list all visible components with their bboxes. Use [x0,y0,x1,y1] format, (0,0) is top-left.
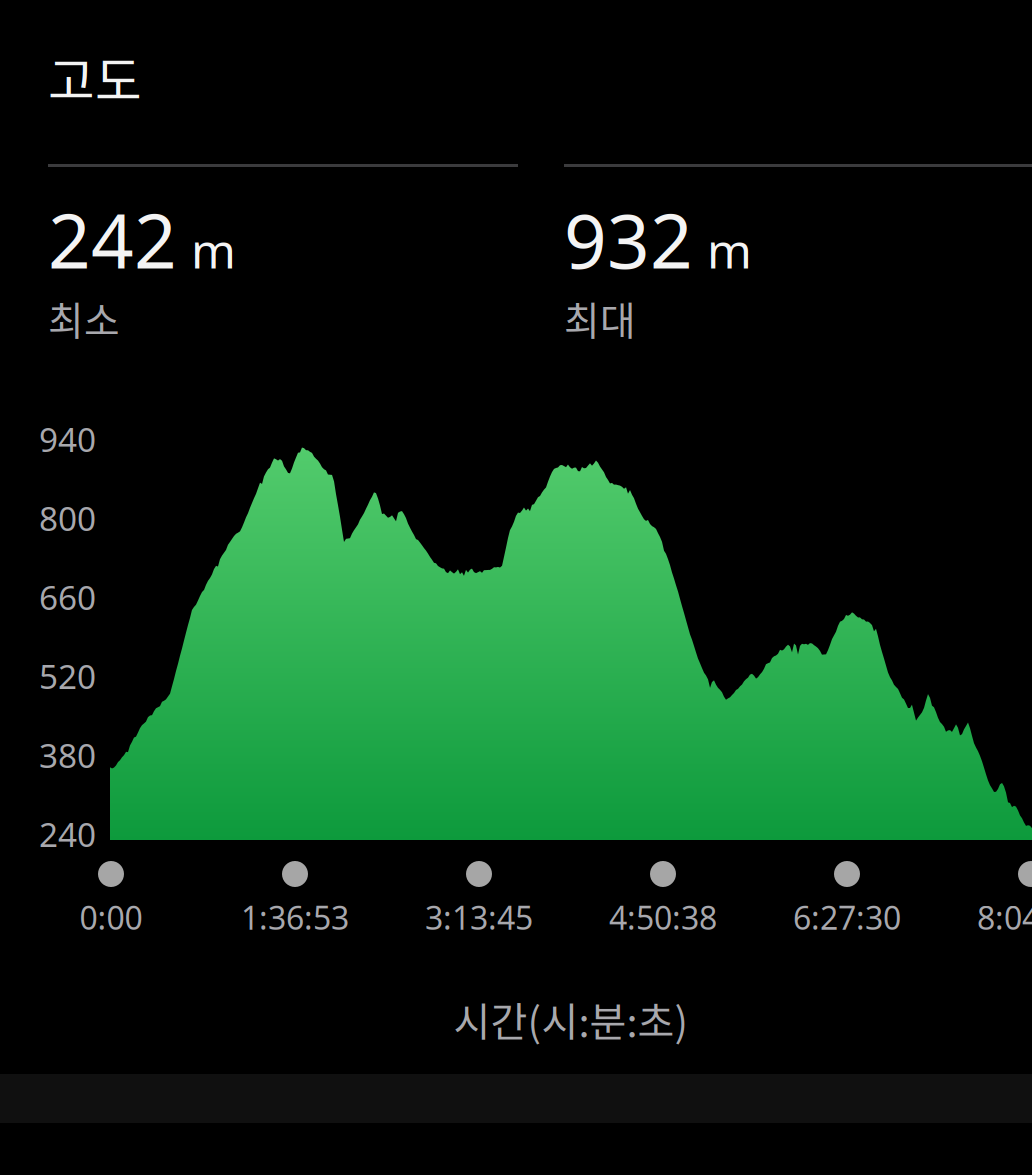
button[interactable]: 932 [564,164,1032,364]
staticText: 3:13:45 [425,896,533,938]
staticText: 최대 [564,290,636,346]
staticText: 240 [39,812,96,856]
button[interactable]: 242 [48,164,518,364]
button[interactable]: 고도 차트 [110,433,1032,840]
staticText: 800 [39,496,96,540]
staticText: m [191,218,236,282]
staticText: 520 [39,654,96,698]
staticText: 242 [48,190,177,289]
staticText: 6:27:30 [793,896,901,938]
staticText: m [707,218,752,282]
staticText: 4:50:38 [609,896,717,938]
staticText: 940 [39,417,96,461]
staticText: 시간(시:분:초) [453,990,688,1048]
staticText: 1:36:53 [241,896,349,938]
staticText: 380 [39,733,96,777]
staticText: 0:00 [79,896,142,938]
staticText: 932 [564,190,693,289]
staticText: 고도 [48,41,142,114]
staticText: 최소 [48,290,120,346]
staticText: 660 [39,575,96,619]
staticText: 8:04:31 [977,896,1032,938]
